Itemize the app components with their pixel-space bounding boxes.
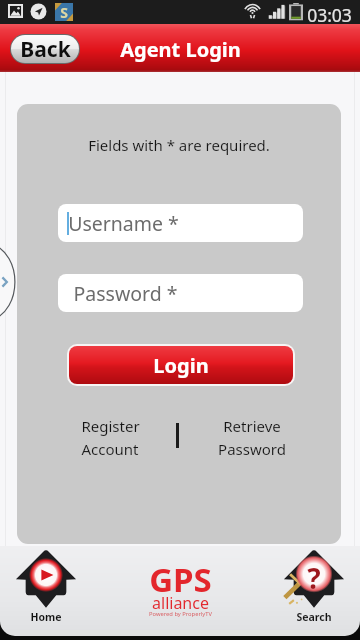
button[interactable]: Home [15, 548, 77, 624]
staticText: Password * [73, 280, 178, 307]
staticText: Home [30, 610, 62, 624]
button[interactable]: Retrieve [197, 416, 307, 459]
button[interactable]: Open side menu [0, 232, 14, 332]
staticText: Username * [68, 210, 179, 237]
staticText: Retrieve [223, 416, 281, 436]
staticText: Agent Login [120, 36, 241, 63]
staticText: alliance [152, 592, 209, 614]
staticText: Register [81, 416, 140, 436]
button[interactable]: Password * [58, 274, 303, 312]
staticText: Fields with * are required. [88, 135, 270, 155]
staticText: Powered by ProperlyTV [149, 610, 212, 618]
other: Search [283, 548, 345, 610]
other: Home [15, 548, 77, 610]
staticText: Password [218, 439, 286, 459]
staticText: S [60, 3, 68, 21]
staticText: 03:03 [307, 3, 352, 27]
button[interactable]: Login [69, 346, 293, 384]
button[interactable]: Search [283, 548, 345, 624]
staticText: ? [307, 559, 321, 597]
staticText: GPS [149, 557, 212, 602]
staticText: Back [20, 35, 71, 63]
button[interactable]: Back [11, 35, 79, 63]
button[interactable]: Register [55, 416, 165, 459]
staticText: Login [153, 352, 209, 379]
staticText: Account [81, 439, 139, 459]
staticText: Search [296, 610, 332, 624]
button[interactable]: Username * [58, 204, 303, 242]
